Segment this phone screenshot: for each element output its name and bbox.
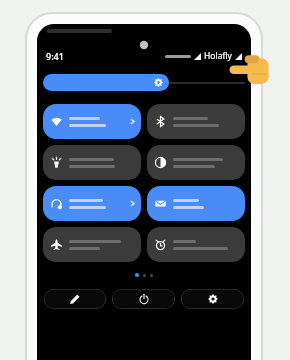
button[interactable]: Edit tiles [44,289,106,309]
button[interactable]: Airplane mode [43,227,141,262]
button[interactable]: Wi-Fi [43,104,141,139]
button[interactable]: Bluetooth [147,104,245,139]
staticText: Holafly [204,50,232,62]
button[interactable]: Dark theme [147,145,245,180]
button[interactable]: Brightness [43,74,245,91]
button[interactable]: Alarm [147,227,245,262]
button[interactable]: Hotspot [43,186,141,221]
button[interactable]: Settings [181,289,244,309]
button[interactable]: Power [112,289,175,309]
staticText: 9:41 [46,50,64,62]
button[interactable]: Messages [147,186,245,221]
button[interactable]: Flashlight [43,145,141,180]
